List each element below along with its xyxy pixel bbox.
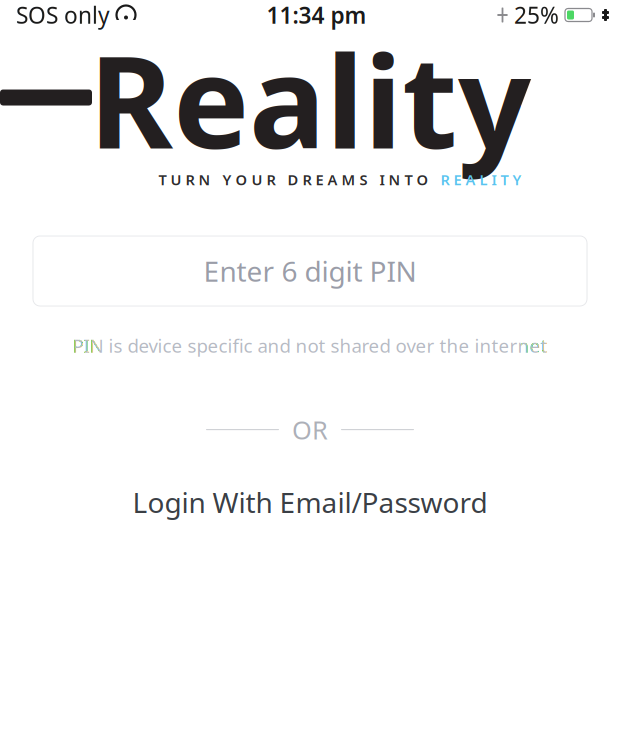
staticText: PIN is device specific and not shared ov…	[72, 333, 547, 358]
button[interactable]: Enter 6 digit PIN	[33, 236, 587, 306]
staticText: Reality	[89, 14, 531, 184]
staticText: Login With Email/Password	[132, 483, 487, 521]
staticText: Enter 6 digit PIN	[203, 252, 416, 290]
staticText: 25%	[514, 0, 559, 30]
staticText: 11:34 pm	[266, 0, 366, 30]
staticText: R E A L I T Y	[436, 170, 521, 189]
staticText: T U R N Y O U R D R E A M S I N T O	[158, 170, 436, 189]
staticText: SOS only	[16, 0, 110, 30]
button[interactable]: Login With Email/Password	[33, 475, 587, 529]
staticText: OR	[292, 413, 328, 446]
